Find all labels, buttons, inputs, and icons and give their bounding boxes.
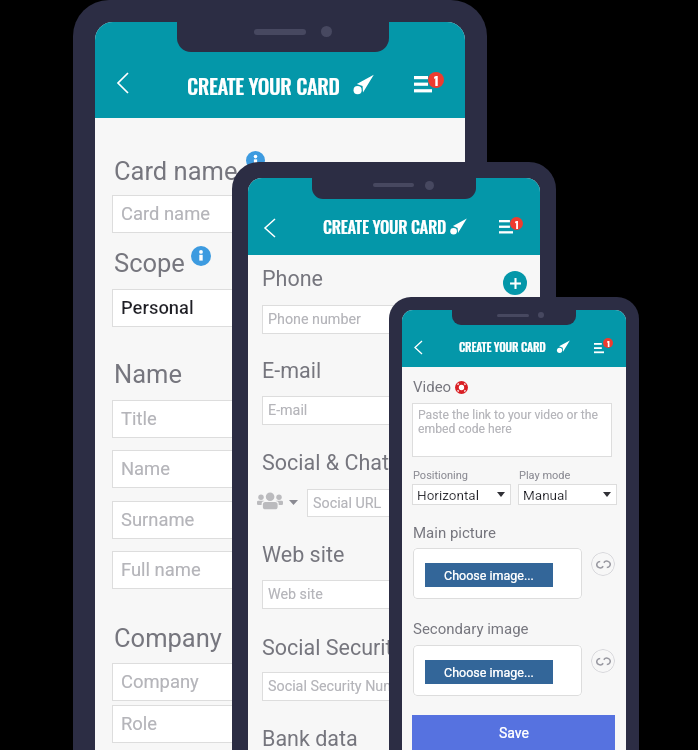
staticText: 1 <box>515 217 519 230</box>
staticText: Role <box>121 713 158 735</box>
button[interactable]: Surname <box>112 501 448 539</box>
button[interactable]: Menu <box>499 220 513 234</box>
button[interactable]: Menu <box>414 76 432 92</box>
button[interactable]: Link <box>591 552 615 576</box>
staticText: Main picture <box>413 524 496 542</box>
staticText: E-mail <box>268 402 308 419</box>
staticText: CREATE YOUR CARD <box>323 214 446 239</box>
staticText: 1 <box>607 338 610 348</box>
staticText: Company <box>114 623 222 653</box>
staticText: Social URL <box>313 495 382 512</box>
staticText: Social & Chat <box>262 450 390 475</box>
staticText: Scope <box>114 248 185 278</box>
button[interactable]: Title <box>112 400 448 438</box>
button[interactable]: Link <box>591 649 615 673</box>
button[interactable]: Back <box>118 73 128 93</box>
staticText: Paste the link to your video or the embe… <box>418 408 598 436</box>
staticText: Save <box>499 725 529 741</box>
button[interactable]: Information <box>246 151 265 170</box>
button[interactable]: Phone number <box>262 305 526 334</box>
staticText: CREATE YOUR CARD <box>459 338 546 355</box>
staticText: Play mode <box>519 469 571 482</box>
button[interactable]: Company <box>112 663 448 701</box>
button[interactable]: Personal <box>112 289 448 327</box>
button[interactable]: Remove video <box>455 381 468 394</box>
button[interactable]: Add phone <box>503 271 527 295</box>
staticText: Phone <box>262 266 323 291</box>
button[interactable]: Back <box>415 341 422 354</box>
staticText: Bank data <box>262 726 358 750</box>
button[interactable]: Menu <box>594 343 604 353</box>
staticText: Surname <box>121 509 195 531</box>
staticText: Card name <box>114 156 238 186</box>
staticText: Name <box>121 458 171 480</box>
staticText: Manual <box>523 487 568 503</box>
staticText: Title <box>121 408 157 430</box>
staticText: Web site <box>268 586 323 603</box>
button[interactable]: Back <box>265 219 275 237</box>
button[interactable]: Social URL <box>307 489 526 517</box>
button[interactable]: E-mail <box>262 396 526 425</box>
staticText: 1 <box>434 72 439 88</box>
staticText: Company <box>121 671 199 693</box>
staticText: Personal <box>121 297 194 319</box>
button[interactable]: Role <box>112 705 448 743</box>
button[interactable]: Name <box>112 450 448 488</box>
button[interactable]: Manual <box>518 484 617 505</box>
button[interactable]: Choose image... <box>425 660 553 684</box>
button[interactable]: Choose image... <box>425 563 553 587</box>
button[interactable]: Save <box>412 715 615 750</box>
staticText: Social Security <box>262 635 403 660</box>
staticText: E-mail <box>262 358 322 383</box>
staticText: Social Security Number <box>268 678 417 695</box>
staticText: Choose image... <box>444 568 534 583</box>
button[interactable]: Horizontal <box>412 484 511 505</box>
button[interactable]: Web site <box>262 580 526 609</box>
staticText: Full name <box>121 559 201 581</box>
button[interactable]: Paste the link to your video or the embe… <box>412 403 612 457</box>
staticText: CREATE YOUR CARD <box>187 70 340 101</box>
button[interactable]: Card name <box>112 195 448 233</box>
button[interactable]: Information <box>191 246 211 266</box>
staticText: Card name <box>121 203 211 225</box>
staticText: Horizontal <box>417 487 479 503</box>
staticText: Web site <box>262 542 345 567</box>
staticText: Choose image... <box>444 665 534 680</box>
staticText: Video <box>413 378 452 396</box>
staticText: Phone number <box>268 311 361 328</box>
button[interactable]: Full name <box>112 551 448 589</box>
button[interactable]: Social Security Number <box>262 672 526 701</box>
staticText: Secondary image <box>413 620 529 638</box>
staticText: Name <box>114 359 182 389</box>
staticText: Positioning <box>413 469 469 482</box>
